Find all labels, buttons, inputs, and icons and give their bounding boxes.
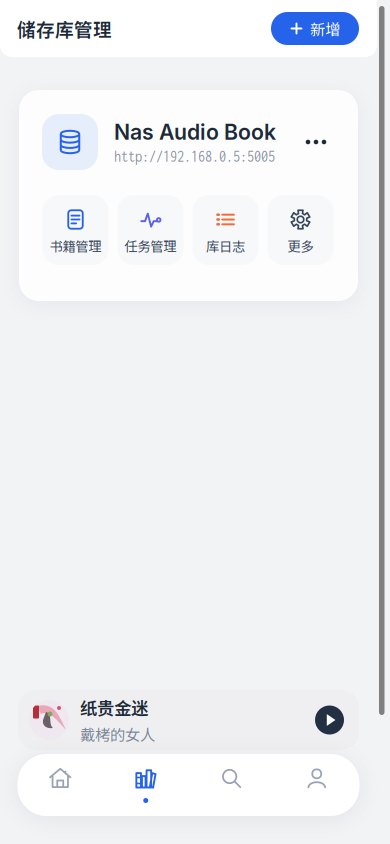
button[interactable]: 首页 xyxy=(17,754,103,816)
button[interactable]: 搜索 xyxy=(188,754,274,816)
staticText: 新增 xyxy=(310,17,340,40)
staticText: 库日志 xyxy=(206,236,245,255)
button[interactable]: 书库 xyxy=(103,754,188,816)
staticText: 纸贵金迷 xyxy=(80,695,148,720)
button[interactable]: 新增 xyxy=(271,12,359,45)
button[interactable]: 书籍管理 xyxy=(42,195,108,265)
button[interactable]: 更多 xyxy=(267,195,333,265)
staticText: 任务管理 xyxy=(124,236,176,255)
button[interactable]: 我的 xyxy=(274,754,359,816)
staticText: 储存库管理 xyxy=(17,15,112,42)
staticText: http://192.168.0.5:5005 xyxy=(114,148,275,165)
staticText: Nas Audio Book xyxy=(114,119,276,145)
staticText: 戴栲的女人 xyxy=(80,723,155,745)
staticText: 更多 xyxy=(287,236,313,255)
button[interactable]: 纸贵金迷 xyxy=(18,690,359,750)
button[interactable]: 更多选项 xyxy=(298,124,334,160)
button[interactable]: 任务管理 xyxy=(117,195,183,265)
staticText: 书籍管理 xyxy=(49,236,101,255)
button[interactable]: 库日志 xyxy=(192,195,258,265)
